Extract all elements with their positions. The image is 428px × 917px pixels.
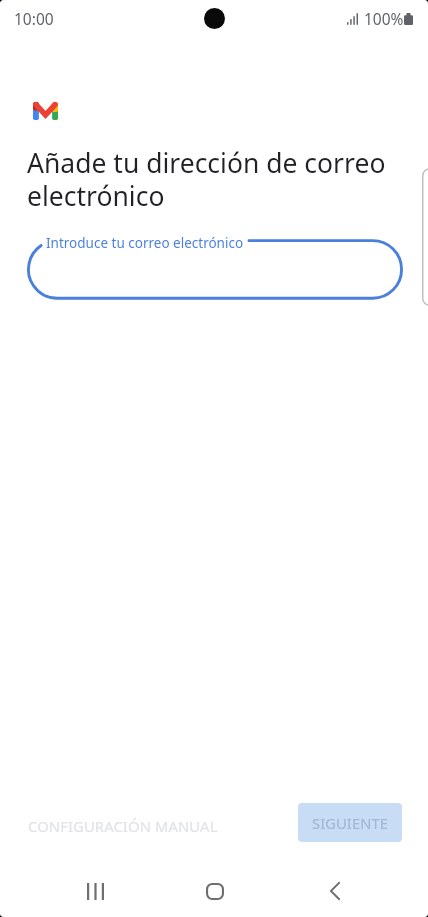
button[interactable]: Home (191, 867, 239, 915)
staticText: Introduce tu correo electrónico (46, 234, 244, 252)
button[interactable]: SIGUIENTE (298, 803, 402, 842)
staticText: CONFIGURACIÓN MANUAL (28, 816, 218, 836)
button[interactable]: Back (311, 867, 359, 915)
staticText: SIGUIENTE (312, 813, 389, 833)
button[interactable]: Recent apps (71, 867, 119, 915)
staticText: Añade tu dirección de correo electrónico (27, 145, 386, 214)
button[interactable]: CONFIGURACIÓN MANUAL (14, 807, 232, 845)
staticText: 10:00 (14, 8, 54, 29)
staticText: 100% (364, 8, 404, 29)
